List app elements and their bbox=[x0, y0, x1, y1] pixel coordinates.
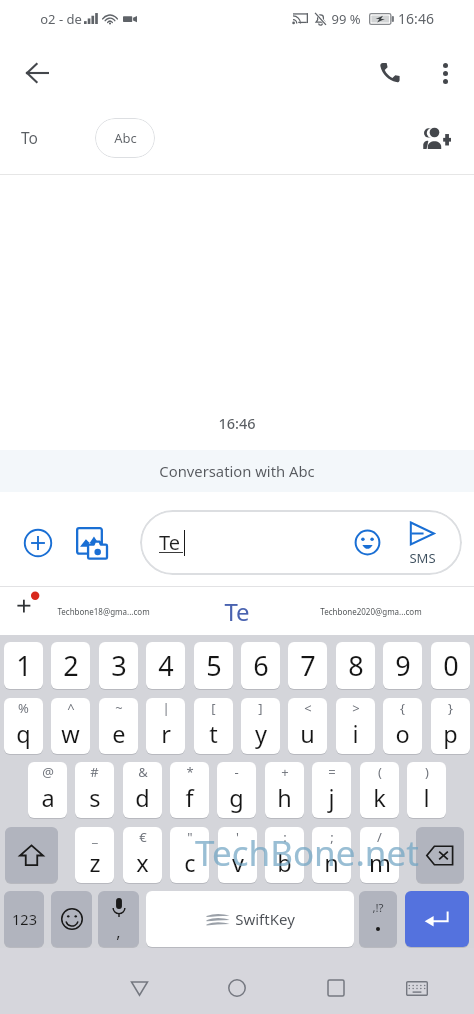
button[interactable]: 5 bbox=[194, 642, 233, 689]
staticText: SMS bbox=[409, 549, 436, 567]
staticText: n bbox=[324, 847, 339, 879]
button[interactable] bbox=[51, 891, 92, 947]
staticText: 0 bbox=[443, 647, 459, 684]
button[interactable]: 0 bbox=[431, 642, 470, 689]
staticText: To bbox=[21, 127, 38, 148]
button[interactable]: ] bbox=[241, 698, 280, 754]
button[interactable]: Te bbox=[197, 589, 277, 633]
button[interactable]: ; bbox=[312, 827, 351, 883]
staticText: @ bbox=[42, 763, 54, 781]
staticText: g bbox=[229, 782, 244, 814]
button[interactable]: ^ bbox=[51, 698, 90, 754]
button[interactable]: Send SMS bbox=[396, 514, 448, 572]
button[interactable]: Abc bbox=[95, 118, 155, 158]
staticText: Conversation with Abc bbox=[159, 461, 315, 481]
button[interactable]: | bbox=[146, 698, 185, 754]
staticText: e bbox=[112, 718, 126, 750]
staticText: ] bbox=[258, 699, 263, 717]
button[interactable]: Te bbox=[140, 510, 462, 575]
staticText: € bbox=[139, 828, 147, 846]
button[interactable]: 8 bbox=[336, 642, 375, 689]
staticText: [ bbox=[211, 699, 216, 717]
button[interactable]: % bbox=[4, 698, 43, 754]
button[interactable]: " bbox=[170, 827, 209, 883]
staticText: p bbox=[443, 718, 458, 750]
staticText: < bbox=[304, 699, 312, 717]
staticText: , bbox=[116, 921, 121, 943]
button[interactable]: 4 bbox=[146, 642, 185, 689]
button[interactable]: More options bbox=[421, 49, 469, 97]
button[interactable]: _ bbox=[75, 827, 114, 883]
button[interactable]: @ bbox=[28, 762, 67, 818]
button[interactable]: 2 bbox=[51, 642, 90, 689]
button[interactable]: SwiftKey bbox=[146, 891, 354, 947]
staticText: a bbox=[41, 782, 55, 814]
staticText: h bbox=[277, 782, 292, 814]
button[interactable]: & bbox=[123, 762, 162, 818]
other: Enter bbox=[405, 891, 469, 947]
staticText: ^ bbox=[67, 699, 75, 717]
button[interactable]: - bbox=[217, 762, 256, 818]
button[interactable]: Techbone18@gma...com bbox=[43, 589, 163, 633]
button[interactable]: = bbox=[312, 762, 351, 818]
button[interactable]: ~ bbox=[99, 698, 138, 754]
staticText: 16:46 bbox=[398, 9, 434, 28]
button[interactable]: Gallery bbox=[69, 521, 113, 565]
staticText: i bbox=[352, 718, 359, 750]
button[interactable]: Add shortcut bbox=[8, 589, 42, 633]
staticText: Abc bbox=[114, 129, 137, 147]
button[interactable]: ' bbox=[218, 827, 257, 883]
button[interactable]: 123 bbox=[4, 891, 44, 947]
button[interactable]: { bbox=[383, 698, 422, 754]
staticText: y bbox=[255, 718, 267, 750]
button[interactable]: Call bbox=[366, 49, 414, 97]
staticText: ~ bbox=[115, 699, 123, 717]
staticText: k bbox=[373, 782, 386, 814]
button[interactable]: [ bbox=[194, 698, 233, 754]
button[interactable]: Back bbox=[13, 49, 61, 97]
button[interactable]: € bbox=[123, 827, 162, 883]
button[interactable]: < bbox=[288, 698, 327, 754]
button[interactable]: Add people bbox=[414, 115, 460, 161]
staticText: t bbox=[209, 718, 218, 750]
staticText: % bbox=[18, 699, 29, 717]
button[interactable]: } bbox=[431, 698, 470, 754]
staticText: = bbox=[328, 763, 336, 781]
staticText: { bbox=[400, 699, 405, 717]
button[interactable]: 7 bbox=[288, 642, 327, 689]
button[interactable]: Add attachment bbox=[16, 521, 60, 565]
button[interactable]: Emoji bbox=[349, 524, 385, 560]
button[interactable]: ) bbox=[407, 762, 446, 818]
button[interactable]: 6 bbox=[241, 642, 280, 689]
button[interactable]: , bbox=[98, 891, 139, 947]
button[interactable]: : bbox=[265, 827, 304, 883]
button[interactable]: + bbox=[265, 762, 304, 818]
button[interactable]: Hide keyboard bbox=[395, 966, 439, 1010]
button[interactable]: > bbox=[336, 698, 375, 754]
button[interactable]: Recents bbox=[314, 966, 358, 1010]
staticText: > bbox=[352, 699, 360, 717]
button[interactable]: Back bbox=[117, 966, 161, 1010]
button[interactable]: Techbone2020@gma...com bbox=[311, 589, 431, 633]
button[interactable]: 3 bbox=[99, 642, 138, 689]
button[interactable]: Home bbox=[215, 966, 259, 1010]
staticText: ' bbox=[236, 828, 239, 846]
staticText: : bbox=[283, 828, 287, 846]
button[interactable]: ( bbox=[360, 762, 399, 818]
button[interactable]: * bbox=[170, 762, 209, 818]
button[interactable] bbox=[416, 827, 464, 883]
button[interactable] bbox=[405, 891, 469, 947]
button[interactable]: 9 bbox=[383, 642, 422, 689]
button[interactable]: 1 bbox=[4, 642, 43, 689]
button[interactable] bbox=[5, 827, 58, 883]
button[interactable]: / bbox=[360, 827, 399, 883]
staticText: o bbox=[395, 718, 410, 750]
button[interactable]: # bbox=[75, 762, 114, 818]
staticText: _ bbox=[92, 828, 98, 846]
staticText: 7 bbox=[300, 647, 316, 684]
button[interactable]: ,!? bbox=[359, 891, 397, 947]
staticText: ; bbox=[330, 828, 334, 846]
staticText: v bbox=[232, 847, 244, 879]
staticText: ) bbox=[425, 763, 429, 781]
staticText: + bbox=[281, 763, 289, 781]
